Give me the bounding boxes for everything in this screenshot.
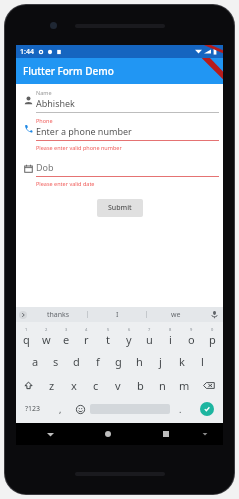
staticText: 0 bbox=[211, 327, 214, 332]
button[interactable]: g bbox=[108, 349, 129, 373]
staticText: 3 bbox=[65, 327, 68, 332]
button[interactable]: we bbox=[147, 310, 205, 320]
staticText: v bbox=[115, 378, 121, 393]
staticText: 5 bbox=[107, 327, 110, 332]
staticText: c bbox=[93, 378, 99, 393]
staticText: d bbox=[73, 354, 80, 369]
staticText: t bbox=[106, 332, 110, 347]
staticText: 8 bbox=[169, 327, 172, 332]
button[interactable]: Submit bbox=[97, 199, 143, 217]
staticText: e bbox=[63, 332, 70, 347]
staticText: u bbox=[146, 332, 153, 347]
staticText: b bbox=[137, 378, 144, 393]
staticText: n bbox=[159, 378, 166, 393]
button[interactable]: Home bbox=[98, 424, 118, 444]
button[interactable]: 5 bbox=[97, 325, 118, 349]
button[interactable]: n bbox=[151, 373, 173, 397]
staticText: 6 bbox=[128, 327, 131, 332]
button[interactable]: 2 bbox=[36, 325, 56, 349]
staticText: Please enter valid phone number bbox=[36, 144, 122, 151]
other: Person bbox=[24, 96, 33, 105]
staticText: h bbox=[136, 354, 143, 369]
staticText: Please enter valid date bbox=[36, 180, 95, 187]
staticText: thanks bbox=[47, 310, 70, 320]
button[interactable]: 7 bbox=[139, 325, 160, 349]
button[interactable]: x bbox=[63, 373, 85, 397]
other: Phone bbox=[24, 124, 33, 133]
staticText: 7 bbox=[148, 327, 151, 332]
button[interactable]: k bbox=[171, 349, 192, 373]
button[interactable]: Phone bbox=[16, 115, 223, 155]
staticText: we bbox=[171, 310, 181, 320]
staticText: q bbox=[23, 332, 30, 347]
button[interactable]: thanks bbox=[30, 310, 87, 320]
staticText: 2 bbox=[45, 327, 48, 332]
button[interactable]: s bbox=[45, 349, 66, 373]
button[interactable]: 4 bbox=[76, 325, 97, 349]
staticText: ?123 bbox=[25, 404, 41, 414]
button[interactable]: 3 bbox=[56, 325, 76, 349]
staticText: o bbox=[188, 332, 195, 347]
button[interactable]: 0 bbox=[202, 325, 223, 349]
button[interactable]: Backspace bbox=[195, 373, 223, 397]
staticText: 9 bbox=[190, 327, 193, 332]
button[interactable]: d bbox=[66, 349, 87, 373]
staticText: I bbox=[116, 310, 119, 320]
button[interactable]: Shift bbox=[16, 373, 41, 397]
staticText: f bbox=[96, 354, 100, 369]
button[interactable]: 8 bbox=[160, 325, 181, 349]
button[interactable]: m bbox=[173, 373, 195, 397]
staticText: Name bbox=[36, 89, 52, 96]
staticText: Phone bbox=[36, 117, 53, 124]
button[interactable]: Period bbox=[170, 397, 190, 421]
staticText: x bbox=[71, 378, 77, 393]
button[interactable]: Back bbox=[40, 424, 60, 444]
staticText: Enter a phone number bbox=[36, 125, 132, 137]
staticText: 1 bbox=[25, 327, 28, 332]
button[interactable]: Voice input bbox=[205, 307, 223, 322]
button[interactable]: Date bbox=[16, 155, 223, 191]
staticText: i bbox=[169, 332, 172, 347]
staticText: z bbox=[49, 378, 55, 393]
staticText: k bbox=[179, 354, 185, 369]
button[interactable]: h bbox=[129, 349, 150, 373]
staticText: s bbox=[53, 354, 59, 369]
button[interactable]: z bbox=[41, 373, 63, 397]
button[interactable]: Expand suggestions bbox=[16, 307, 30, 322]
staticText: Abhishek bbox=[36, 97, 75, 109]
button[interactable]: a bbox=[25, 349, 45, 373]
staticText: g bbox=[115, 354, 122, 369]
button[interactable]: b bbox=[129, 373, 151, 397]
button[interactable]: Keyboard down bbox=[197, 426, 213, 442]
staticText: 4 bbox=[85, 327, 88, 332]
staticText: l bbox=[201, 354, 204, 369]
staticText: p bbox=[209, 332, 216, 347]
staticText: . bbox=[179, 403, 182, 415]
staticText: w bbox=[42, 332, 51, 347]
button[interactable]: c bbox=[85, 373, 107, 397]
other: Date bbox=[24, 164, 33, 173]
staticText: y bbox=[126, 332, 132, 347]
button[interactable]: I bbox=[88, 310, 146, 320]
button[interactable]: Recent apps bbox=[156, 424, 176, 444]
staticText: r bbox=[84, 332, 89, 347]
staticText: j bbox=[159, 354, 162, 369]
button[interactable]: 9 bbox=[181, 325, 202, 349]
button[interactable]: f bbox=[87, 349, 108, 373]
staticText: a bbox=[32, 354, 39, 369]
button[interactable]: ?123 bbox=[16, 397, 50, 421]
staticText: m bbox=[179, 378, 190, 393]
button[interactable]: 1 bbox=[16, 325, 36, 349]
button[interactable]: j bbox=[150, 349, 171, 373]
button[interactable]: Emoji bbox=[70, 397, 90, 421]
button[interactable]: Enter bbox=[190, 397, 223, 421]
staticText: , bbox=[59, 403, 62, 415]
staticText: Submit bbox=[108, 203, 132, 213]
button[interactable]: Person bbox=[16, 87, 223, 115]
staticText: Flutter Form Demo bbox=[23, 64, 114, 78]
button[interactable]: l bbox=[192, 349, 213, 373]
button[interactable]: Comma bbox=[50, 397, 70, 421]
button[interactable]: v bbox=[107, 373, 129, 397]
button[interactable]: 6 bbox=[118, 325, 139, 349]
